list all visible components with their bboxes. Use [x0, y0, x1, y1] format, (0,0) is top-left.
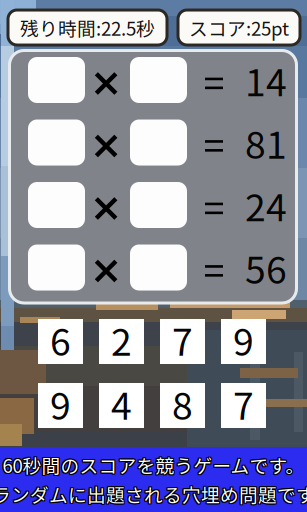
staticText: 56	[245, 240, 287, 295]
staticText: 81	[245, 115, 287, 170]
staticText: 60秒間のスコアを競うゲームです。	[3, 451, 305, 478]
staticText: 7	[172, 312, 193, 367]
staticText: ランダムに出題される穴埋め問題です	[0, 480, 307, 507]
staticText: 60秒間のスコアを競うゲームです。	[2, 450, 304, 477]
staticText: ランダムに出題される穴埋め問題です	[0, 479, 307, 506]
staticText: 60秒間のスコアを競うゲームです。	[2, 451, 304, 478]
button[interactable]: スコア:25pt	[178, 10, 300, 45]
button[interactable]: 9	[221, 319, 266, 364]
staticText: 60秒間のスコアを競うゲームです。	[3, 452, 305, 479]
staticText: 60秒間のスコアを競うゲームです。	[1, 451, 303, 478]
staticText: ランダムに出題される穴埋め問題です	[0, 481, 307, 508]
staticText: 9	[233, 312, 254, 367]
button[interactable]: 9	[38, 383, 83, 428]
staticText: 60秒間のスコアを競うゲームです。	[1, 452, 303, 479]
staticText: 9	[50, 376, 71, 431]
staticText: 60秒間のスコアを競うゲームです。	[2, 452, 304, 479]
staticText: 7	[233, 376, 254, 431]
staticText: ランダムに出題される穴埋め問題です	[0, 480, 307, 507]
staticText: ランダムに出題される穴埋め問題です	[0, 481, 307, 508]
staticText: 14	[245, 53, 287, 107]
staticText: 60秒間のスコアを競うゲームです。	[1, 450, 303, 477]
button[interactable]: 4	[99, 383, 144, 428]
button[interactable]: 6	[38, 319, 83, 364]
staticText: 4	[111, 376, 132, 431]
staticText: 8	[172, 376, 193, 431]
staticText: ランダムに出題される穴埋め問題です	[0, 481, 307, 508]
staticText: 24	[245, 178, 287, 232]
staticText: 残り時間:22.5秒	[20, 14, 155, 41]
button[interactable]: 7	[160, 319, 205, 364]
staticText: ランダムに出題される穴埋め問題です	[0, 480, 307, 507]
staticText: ランダムに出題される穴埋め問題です	[0, 479, 307, 506]
staticText: 6	[50, 312, 71, 367]
staticText: 2	[111, 312, 132, 367]
staticText: 60秒間のスコアを競うゲームです。	[3, 450, 305, 477]
button[interactable]: 7	[221, 383, 266, 428]
staticText: スコア:25pt	[189, 14, 289, 41]
staticText: ランダムに出題される穴埋め問題です	[0, 479, 307, 506]
button[interactable]: 8	[160, 383, 205, 428]
button[interactable]: 残り時間:22.5秒	[8, 10, 167, 45]
button[interactable]: 2	[99, 319, 144, 364]
